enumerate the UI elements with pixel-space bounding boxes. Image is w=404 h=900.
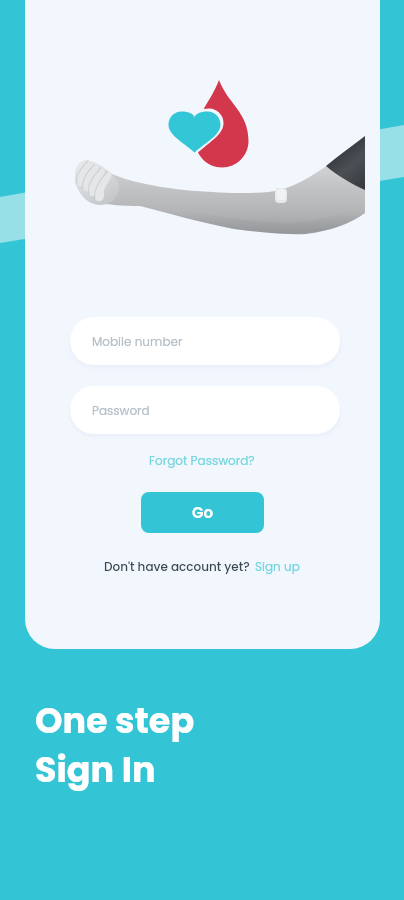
staticText: Sign up	[255, 558, 300, 575]
button[interactable]: Forgot Password?	[141, 449, 263, 472]
staticText: Go	[192, 502, 214, 523]
staticText: Sign In	[35, 745, 156, 794]
staticText: Mobile number	[92, 333, 183, 350]
staticText: Password	[92, 402, 150, 419]
staticText: Don't have account yet?	[104, 558, 250, 575]
staticText: One step	[35, 696, 195, 745]
button[interactable]: Go	[141, 492, 264, 533]
staticText: Forgot Password?	[149, 452, 255, 469]
button[interactable]: Mobile number	[70, 317, 340, 365]
button[interactable]: Password	[70, 386, 340, 434]
button[interactable]: Sign up	[255, 558, 300, 575]
